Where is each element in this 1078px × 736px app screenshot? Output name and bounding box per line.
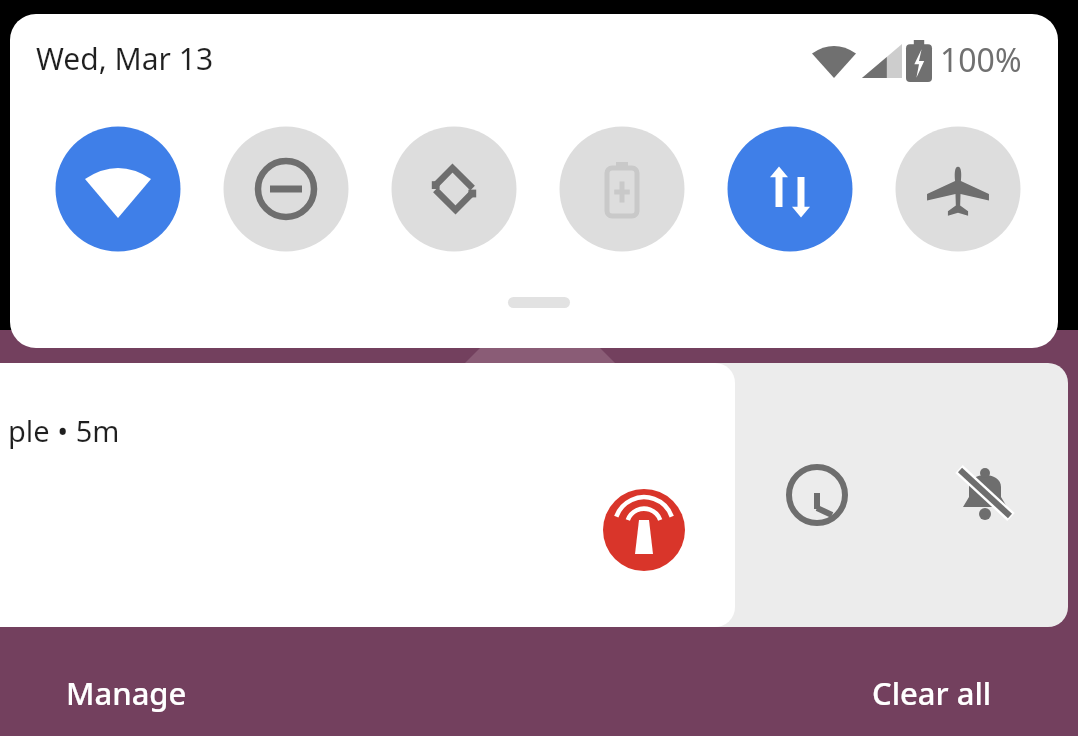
button[interactable]: Expand quick settings xyxy=(508,292,570,312)
button[interactable]: Auto-rotate xyxy=(391,126,517,252)
button[interactable]: Wed, Mar 13 xyxy=(36,38,214,79)
staticText: 100% xyxy=(940,38,1022,82)
button[interactable]: Silence notification xyxy=(957,467,1013,523)
button[interactable]: Snooze xyxy=(789,467,845,523)
button[interactable]: Clear all xyxy=(872,672,992,714)
button[interactable]: Do Not Disturb xyxy=(223,126,349,252)
staticText: ple • 5m xyxy=(8,411,120,450)
button[interactable]: Airplane mode xyxy=(895,126,1021,252)
button[interactable]: Battery Saver xyxy=(559,126,685,252)
button[interactable]: Mobile data xyxy=(727,126,853,252)
button[interactable]: Notification xyxy=(0,363,705,627)
button[interactable]: Wi-Fi xyxy=(55,126,181,252)
button[interactable]: Manage xyxy=(66,672,187,714)
